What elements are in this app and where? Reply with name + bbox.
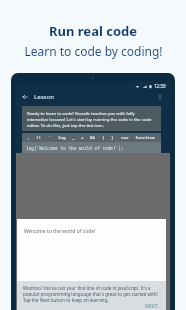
- button[interactable]: _: [71, 135, 76, 141]
- staticText: NEXT: [145, 303, 158, 310]
- staticText: =: [81, 135, 84, 141]
- staticText: var: [121, 135, 129, 141]
- staticText: Learn to code by coding!: [24, 43, 163, 59]
- button[interactable]: (): [35, 135, 43, 141]
- staticText: ': [48, 135, 51, 141]
- staticText: log: [58, 135, 66, 141]
- button[interactable]: More options: [155, 92, 165, 102]
- staticText: Ready to learn to code? Encode teaches y…: [27, 110, 156, 128]
- staticText: Welcome to the world of code!: [24, 228, 96, 235]
- staticText: ;: [27, 135, 30, 141]
- button[interactable]: NEXT: [143, 302, 160, 310]
- button[interactable]: =: [80, 135, 85, 141]
- staticText: (): [36, 135, 42, 141]
- button[interactable]: {: [101, 135, 106, 141]
- staticText: log('Welcome to the world of code!');: [26, 145, 124, 151]
- staticText: {: [102, 135, 105, 141]
- staticText: _: [72, 135, 75, 141]
- staticText: Woohoo! You've run your first line of co…: [23, 285, 160, 303]
- staticText: }: [111, 135, 114, 141]
- staticText: Lesson: [34, 93, 54, 101]
- staticText: 12:30: [154, 83, 166, 89]
- button[interactable]: }: [110, 135, 115, 141]
- button[interactable]: var: [120, 135, 130, 141]
- button[interactable]: &&: [89, 135, 97, 141]
- button[interactable]: log: [57, 135, 67, 141]
- button[interactable]: Ready to learn to code? Encode teaches y…: [22, 106, 161, 131]
- staticText: Run real code: [49, 22, 137, 40]
- button[interactable]: ;: [26, 135, 31, 141]
- button[interactable]: Back: [20, 92, 30, 102]
- button[interactable]: function: [134, 135, 157, 141]
- staticText: function: [135, 135, 156, 141]
- staticText: &&: [90, 135, 96, 141]
- button[interactable]: ': [47, 135, 52, 141]
